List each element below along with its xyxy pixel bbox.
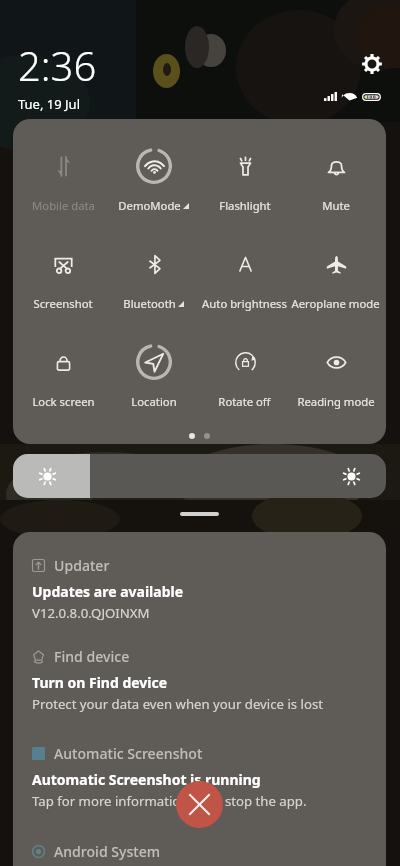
button[interactable]: Aeroplane mode: [290, 244, 381, 311]
staticText: Rotate off: [218, 394, 271, 409]
button[interactable]: Bluetooth: [108, 244, 199, 311]
button[interactable]: Settings: [362, 54, 382, 74]
staticText: V12.0.8.0.QJOINXM: [32, 604, 150, 622]
staticText: Auto brightness: [202, 296, 287, 311]
staticText: Bluetooth: [123, 296, 176, 311]
button[interactable]: Automatic Screenshot: [13, 744, 386, 810]
staticText: Protect your data even when your device …: [32, 695, 324, 713]
staticText: Screenshot: [33, 296, 93, 311]
staticText: Updates are available: [32, 582, 184, 601]
staticText: Automatic Screenshot: [54, 744, 203, 763]
staticText: Mobile data: [32, 198, 95, 213]
button[interactable]: Android System: [13, 842, 386, 866]
button[interactable]: Mute: [290, 146, 381, 213]
staticText: Tap for more information or to stop the …: [32, 792, 307, 810]
staticText: DemoMode: [118, 198, 181, 213]
staticText: Location: [131, 394, 177, 409]
button[interactable]: Screenshot: [18, 244, 108, 311]
staticText: Reading mode: [297, 394, 375, 409]
staticText: 2:36: [18, 38, 97, 92]
button[interactable]: Location: [108, 342, 199, 409]
button[interactable]: Clear all notifications: [176, 781, 223, 828]
staticText: Mute: [322, 198, 350, 213]
button[interactable]: Updater: [13, 556, 386, 622]
staticText: Lock screen: [32, 394, 95, 409]
button[interactable]: Lock screen: [18, 342, 108, 409]
button[interactable]: Auto brightness: [199, 244, 290, 311]
staticText: Flashlight: [219, 198, 271, 213]
button[interactable]: Brightness: [13, 454, 386, 498]
staticText: Android System: [54, 842, 161, 861]
staticText: Find device: [54, 647, 130, 666]
button[interactable]: Reading mode: [290, 342, 381, 409]
button[interactable]: Flashlight: [199, 146, 290, 213]
button[interactable]: Find device: [13, 647, 386, 713]
staticText: Automatic Screenshot is running: [32, 770, 261, 789]
staticText: Tue, 19 Jul: [18, 95, 80, 113]
button[interactable]: Mobile data: [18, 146, 108, 213]
staticText: Updater: [54, 556, 110, 575]
staticText: Aeroplane mode: [291, 296, 380, 311]
button[interactable]: Rotate off: [199, 342, 290, 409]
staticText: Turn on Find device: [32, 673, 168, 692]
button[interactable]: DemoMode: [108, 146, 199, 213]
